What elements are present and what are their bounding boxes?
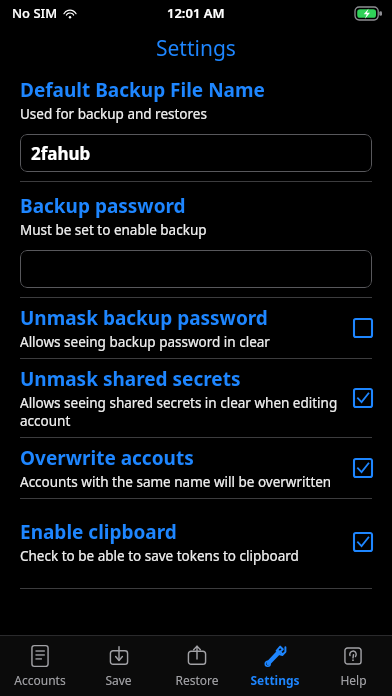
button[interactable]: Unmask backup password — [0, 298, 392, 358]
staticText: No SIM — [12, 4, 58, 22]
button[interactable]: Help — [314, 636, 392, 696]
staticText: Settings — [250, 672, 300, 688]
staticText: Unmask backup password — [20, 305, 268, 331]
staticText: 12:01 AM — [167, 4, 225, 22]
button[interactable]: Enable clipboard — [0, 519, 392, 572]
button[interactable] — [20, 250, 372, 288]
button[interactable]: Unmask shared secrets — [0, 359, 392, 437]
staticText: Overwrite accouts — [20, 445, 194, 471]
staticText: Default Backup File Name — [20, 77, 265, 103]
staticText: Unmask shared secrets — [20, 366, 241, 392]
staticText: Save — [105, 672, 132, 688]
other: Unchecked — [354, 319, 372, 337]
button[interactable]: 2fahub — [20, 134, 372, 172]
staticText: Backup password — [20, 193, 186, 219]
button[interactable]: Accounts — [0, 636, 79, 696]
other: Checked — [354, 533, 372, 551]
staticText: Enable clipboard — [20, 519, 177, 545]
staticText: Settings — [156, 34, 236, 63]
button[interactable]: Overwrite accouts — [0, 438, 392, 498]
staticText: Help — [340, 672, 367, 688]
button[interactable]: Restore — [158, 636, 236, 696]
staticText: Accounts — [14, 672, 66, 688]
other: Checked — [354, 459, 372, 477]
button[interactable]: Save — [79, 636, 158, 696]
staticText: 2fahub — [31, 142, 91, 165]
staticText: Allows seeing shared secrets in clear wh… — [20, 394, 344, 430]
other: Checked — [354, 389, 372, 407]
button[interactable]: Settings — [236, 636, 314, 696]
staticText: Restore — [175, 672, 219, 688]
staticText: Check to be able to save tokens to clipb… — [20, 547, 299, 565]
staticText: Must be set to enable backup — [20, 221, 207, 239]
staticText: Accounts with the same name will be over… — [20, 473, 332, 491]
staticText: Used for backup and restores — [20, 105, 207, 123]
staticText: Allows seeing backup password in clear — [20, 333, 270, 351]
